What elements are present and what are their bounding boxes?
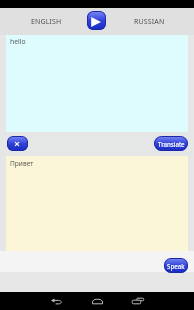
button[interactable]: hello — [6, 35, 188, 132]
staticText: Привет — [10, 159, 34, 168]
button[interactable]: Translate — [154, 136, 188, 151]
button[interactable]: ENGLISH — [3, 8, 89, 35]
button[interactable]: Back — [41, 292, 71, 310]
staticText: Speak — [167, 262, 185, 270]
button[interactable]: Speak — [164, 258, 188, 273]
button[interactable]: Play — [87, 11, 106, 30]
staticText: RUSSIAN — [134, 17, 165, 27]
button[interactable]: Привет — [6, 156, 188, 251]
button[interactable]: RUSSIAN — [106, 8, 192, 35]
button[interactable]: Recent apps — [123, 292, 153, 310]
button[interactable]: Clear text — [7, 136, 28, 151]
staticText: Translate — [158, 140, 185, 148]
button[interactable]: Home — [82, 292, 112, 310]
staticText: hello — [10, 37, 26, 46]
staticText: ENGLISH — [31, 17, 62, 27]
